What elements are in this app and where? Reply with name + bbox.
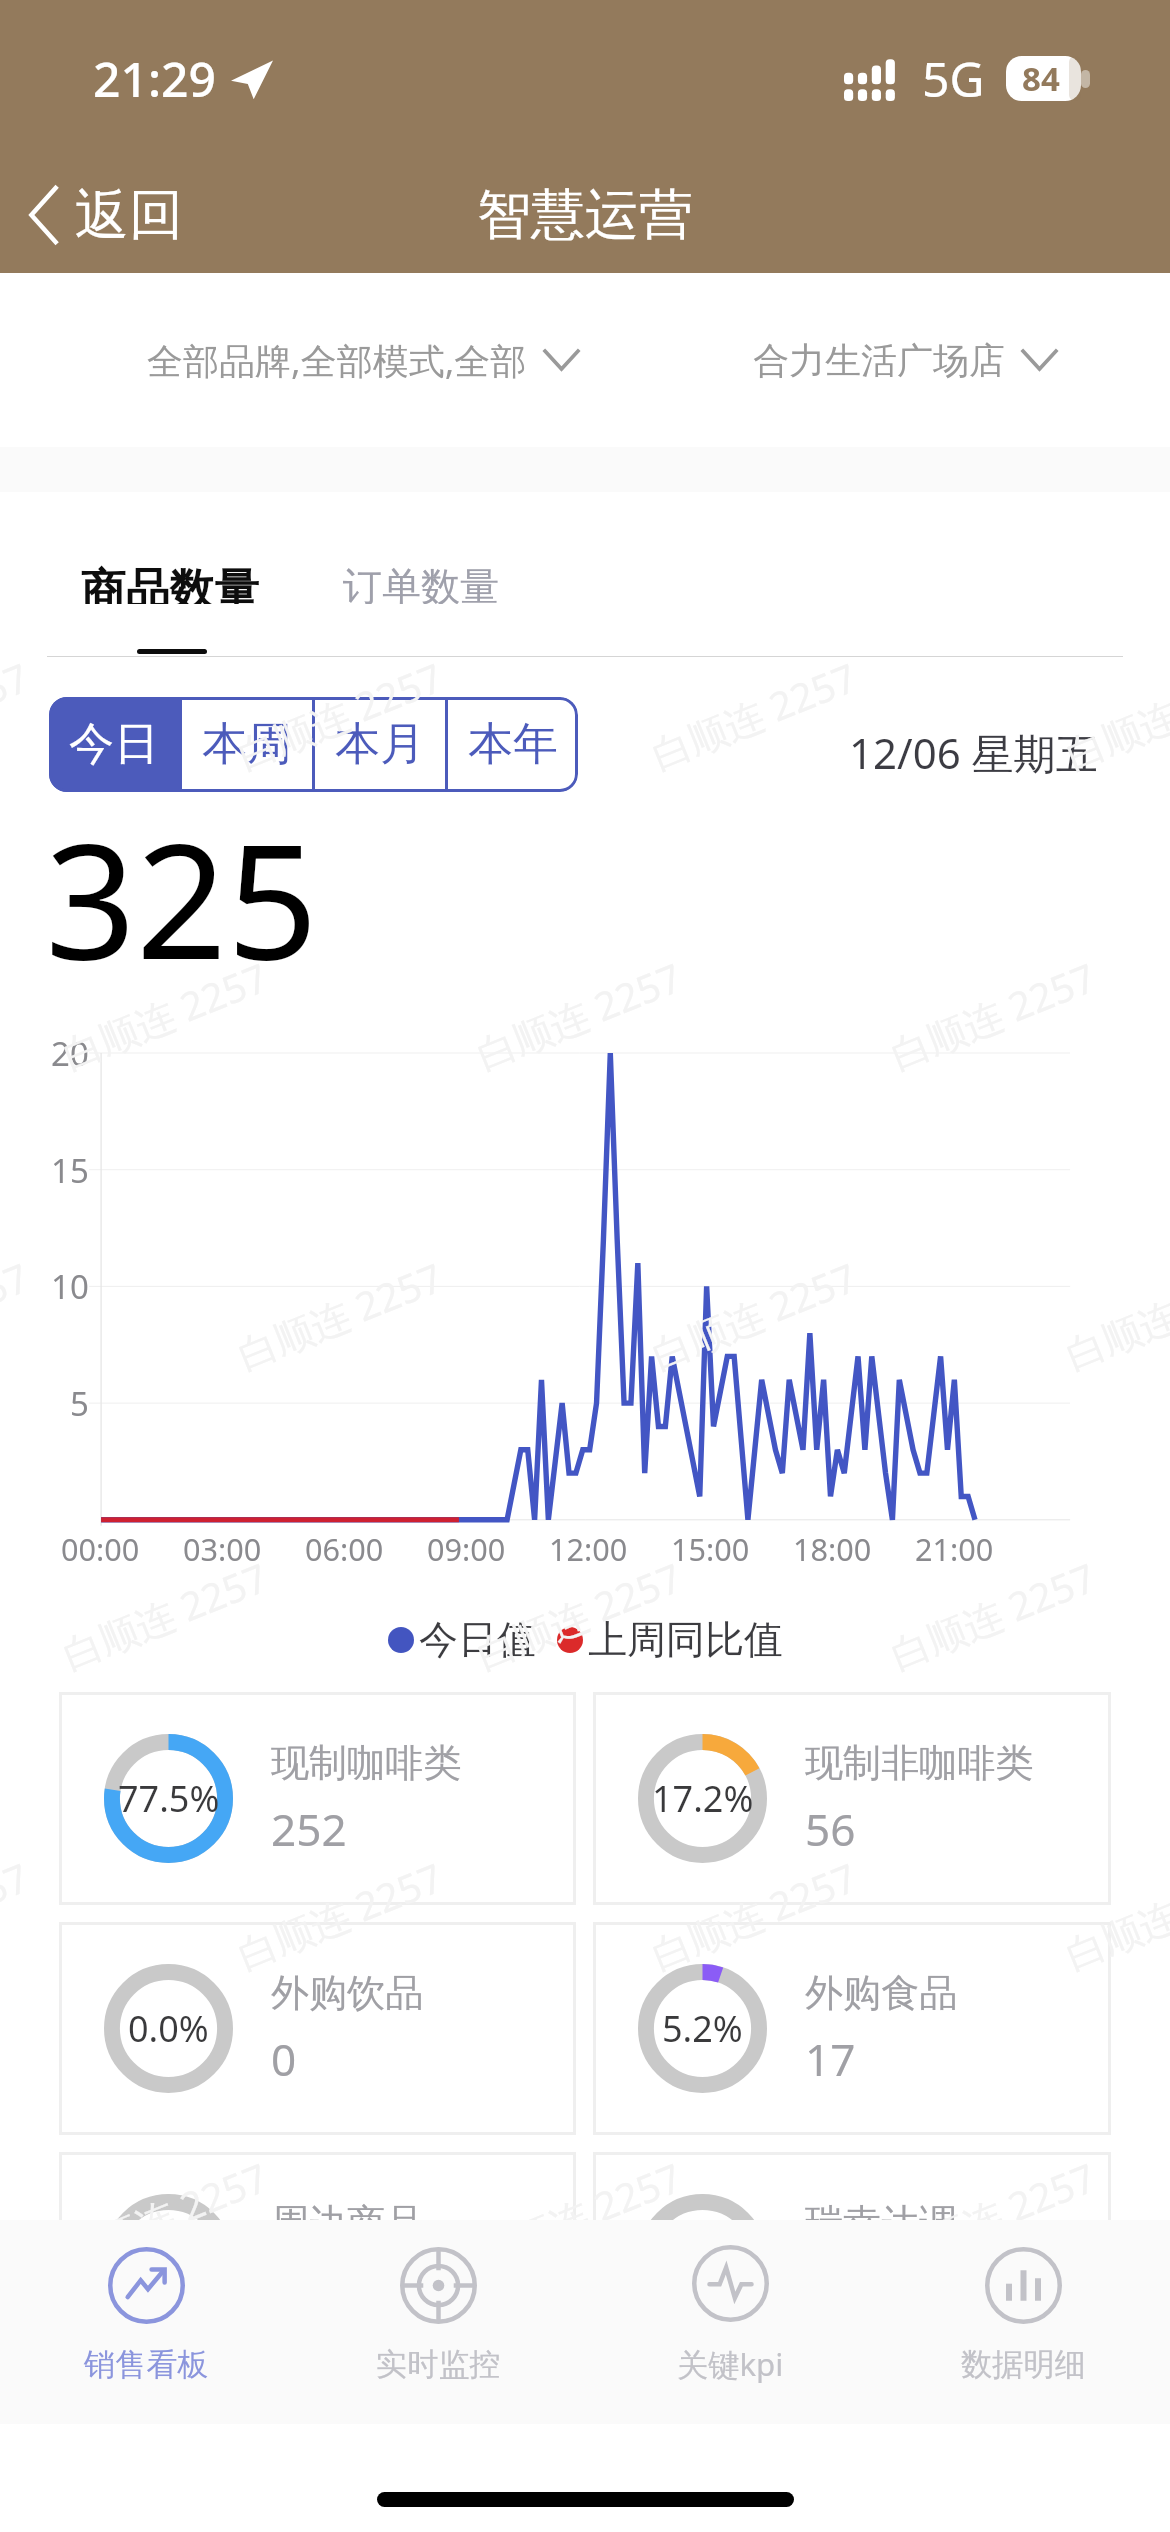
staticText: 5.2% (662, 2004, 743, 2053)
staticText: 17.2% (652, 1774, 754, 1823)
staticText: 白顺连 2257 (882, 2150, 1103, 2220)
staticText: 全部品牌,全部模式,全部 (147, 336, 527, 385)
staticText: 06:00 (305, 1528, 384, 1570)
staticText: 白顺连 2257 (643, 657, 864, 780)
staticText: 现制咖啡类 (271, 1739, 462, 1787)
staticText: 上周同比值 (588, 1615, 783, 1664)
staticText: 外购饮品 (271, 1969, 424, 2017)
button[interactable]: 返回 (15, 169, 207, 261)
staticText: 返回 (75, 181, 183, 249)
button[interactable]: 实时监控 (292, 2220, 584, 2424)
staticText: 5G (922, 46, 985, 111)
staticText: 白顺连 2257 (229, 1250, 450, 1380)
staticText: 商品数量 (81, 562, 259, 604)
staticText: 现制非咖啡类 (805, 1739, 1034, 1787)
staticText: 白顺连 2257 (643, 1850, 864, 1980)
staticText: 252 (271, 1799, 347, 1859)
staticText: 12/06 星期五 (849, 724, 1098, 781)
staticText: 外购食品 (805, 1969, 958, 2017)
staticText: 订单数量 (343, 562, 499, 604)
button[interactable]: 订单数量 (325, 550, 517, 616)
staticText: 白顺连 2257 (468, 1550, 689, 1680)
staticText: 0.0% (128, 2234, 209, 2283)
staticText: 白顺连 2257 (54, 2150, 275, 2220)
button[interactable]: 本月 (315, 697, 445, 792)
staticText: 白顺连 2257 (882, 950, 1103, 1080)
button[interactable]: 销售看板 (0, 2220, 292, 2424)
staticText: 18:00 (793, 1528, 872, 1570)
staticText: 84 (1022, 56, 1060, 101)
staticText: 白顺连 2257 (643, 1250, 864, 1380)
staticText: 本年 (468, 716, 558, 773)
button[interactable]: 合力生活广场店 (753, 273, 1056, 447)
button[interactable]: 数据明细 (877, 2220, 1170, 2424)
staticText: 白顺连 2257 (1057, 657, 1170, 780)
staticText: 21:00 (915, 1528, 994, 1570)
button[interactable]: 17.2% (593, 1692, 1111, 1905)
staticText: 00:00 (61, 1528, 140, 1570)
staticText: 0 (271, 2029, 297, 2089)
staticText: 56 (805, 1799, 856, 1859)
button[interactable]: 本周 (182, 697, 312, 792)
button[interactable]: 5.2% (593, 1922, 1111, 2135)
button[interactable]: 0.0% (593, 2152, 1111, 2365)
button[interactable]: 77.5% (59, 1692, 576, 1905)
staticText: 5 (70, 1381, 89, 1426)
staticText: 0.0% (128, 2004, 209, 2053)
staticText: 20 (51, 1031, 89, 1076)
button[interactable]: 0.0% (59, 1922, 576, 2135)
button[interactable]: 商品数量 (63, 550, 277, 616)
staticText: 实时监控 (376, 2345, 501, 2384)
staticText: 15:00 (671, 1528, 750, 1570)
staticText: 17 (805, 2029, 856, 2089)
staticText: 今日 (69, 716, 159, 773)
staticText: 周边商品 (271, 2199, 424, 2247)
staticText: 白顺连 2257 (229, 657, 450, 780)
staticText: 15 (51, 1148, 89, 1193)
staticText: 本周 (202, 716, 292, 773)
button[interactable]: 全部品牌,全部模式,全部 (147, 273, 578, 447)
staticText: 智慧运营 (477, 181, 693, 249)
button[interactable]: 0.0% (59, 2152, 576, 2365)
button[interactable]: 关键kpi (584, 2220, 877, 2424)
button[interactable]: 今日 (49, 697, 179, 792)
staticText: 12:00 (549, 1528, 628, 1570)
staticText: 销售看板 (84, 2345, 209, 2384)
staticText: 10 (51, 1264, 89, 1309)
staticText: 03:00 (183, 1528, 262, 1570)
staticText: 0.0% (662, 2234, 743, 2283)
staticText: 白顺连 2257 (54, 950, 275, 1080)
staticText: 关键kpi (677, 2343, 784, 2386)
staticText: 白顺连 2257 (468, 950, 689, 1080)
staticText: 21:29 (93, 46, 216, 111)
staticText: 白顺连 2257 (229, 1850, 450, 1980)
staticText: 数据明细 (961, 2345, 1086, 2384)
staticText: 77.5% (118, 1774, 220, 1823)
staticText: 325 (45, 789, 318, 978)
staticText: 白顺连 2257 (1057, 1850, 1170, 1980)
staticText: 09:00 (427, 1528, 506, 1570)
staticText: 白顺连 2257 (468, 2150, 689, 2220)
button[interactable]: 本年 (448, 697, 578, 792)
staticText: 今日值 (419, 1615, 536, 1664)
staticText: 合力生活广场店 (753, 338, 1005, 383)
staticText: 白顺连 2257 (54, 1550, 275, 1680)
staticText: 白顺连 2257 (882, 1550, 1103, 1680)
staticText: 本月 (335, 716, 425, 773)
staticText: 瑞幸达调 (805, 2199, 958, 2247)
staticText: 白顺连 2257 (1057, 1250, 1170, 1380)
